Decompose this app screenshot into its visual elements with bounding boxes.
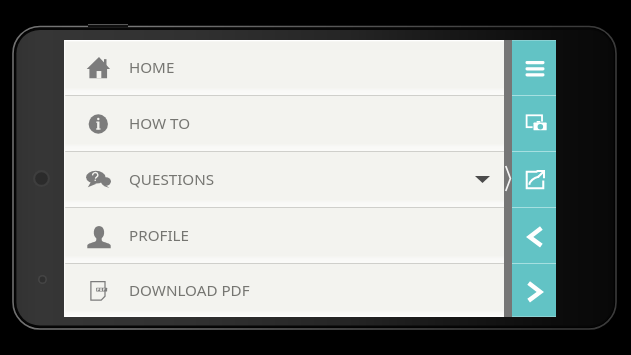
staticText: HOW TO: [129, 113, 191, 134]
button[interactable]: HOW TO: [64, 96, 504, 151]
button[interactable]: Screenshot: [512, 96, 556, 151]
staticText: PROFILE: [129, 225, 189, 246]
staticText: DOWNLOAD PDF: [129, 280, 250, 301]
button[interactable]: DOWNLOAD PDF: [64, 264, 504, 317]
staticText: HOME: [129, 57, 175, 78]
button[interactable]: HOME: [64, 40, 504, 95]
staticText: QUESTIONS: [129, 169, 215, 190]
button[interactable]: Menu: [512, 40, 556, 95]
button[interactable]: Share: [512, 152, 556, 207]
button[interactable]: Open drawer: [504, 40, 512, 317]
button[interactable]: PROFILE: [64, 208, 504, 263]
button[interactable]: QUESTIONS: [64, 152, 504, 207]
button[interactable]: Back: [512, 208, 556, 263]
button[interactable]: Forward: [512, 264, 556, 317]
